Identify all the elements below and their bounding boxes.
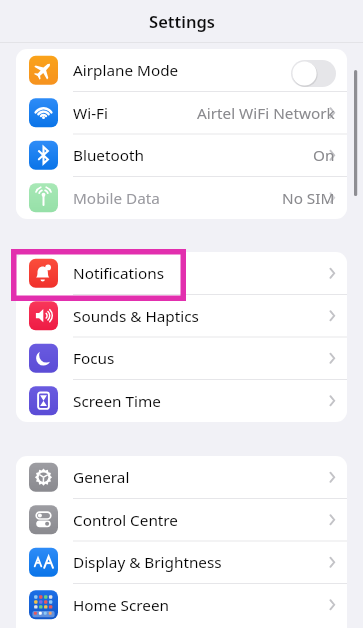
staticText: General <box>73 467 130 488</box>
staticText: Focus <box>73 348 115 369</box>
staticText: Notifications <box>73 263 164 284</box>
staticText: Control Centre <box>73 510 178 531</box>
button[interactable]: Notifications <box>16 252 347 295</box>
button[interactable]: Focus <box>16 337 347 380</box>
staticText: Settings <box>149 10 215 32</box>
staticText: Airplane Mode <box>73 60 179 81</box>
staticText: Screen Time <box>73 391 161 412</box>
staticText: Home Screen <box>73 595 169 616</box>
staticText: Bluetooth <box>73 145 144 166</box>
button[interactable]: Wi-Fi <box>16 92 347 135</box>
staticText: Airtel WiFi Network <box>197 103 335 124</box>
button[interactable]: Screen Time <box>16 380 347 423</box>
button[interactable]: Sounds & Haptics <box>16 295 347 338</box>
button[interactable]: General <box>16 456 347 499</box>
button[interactable]: Bluetooth <box>16 134 347 177</box>
staticText: Display & Brightness <box>73 552 222 573</box>
button[interactable]: Display & Brightness <box>16 541 347 584</box>
staticText: No SIM <box>282 188 335 209</box>
staticText: Wi-Fi <box>73 103 108 124</box>
staticText: Sounds & Haptics <box>73 306 199 327</box>
button[interactable]: Airplane Mode <box>16 49 347 92</box>
button[interactable]: Home Screen <box>16 584 347 627</box>
button[interactable]: Mobile Data <box>16 177 347 220</box>
button[interactable]: Control Centre <box>16 499 347 542</box>
staticText: On <box>313 145 335 166</box>
staticText: Mobile Data <box>73 188 160 209</box>
